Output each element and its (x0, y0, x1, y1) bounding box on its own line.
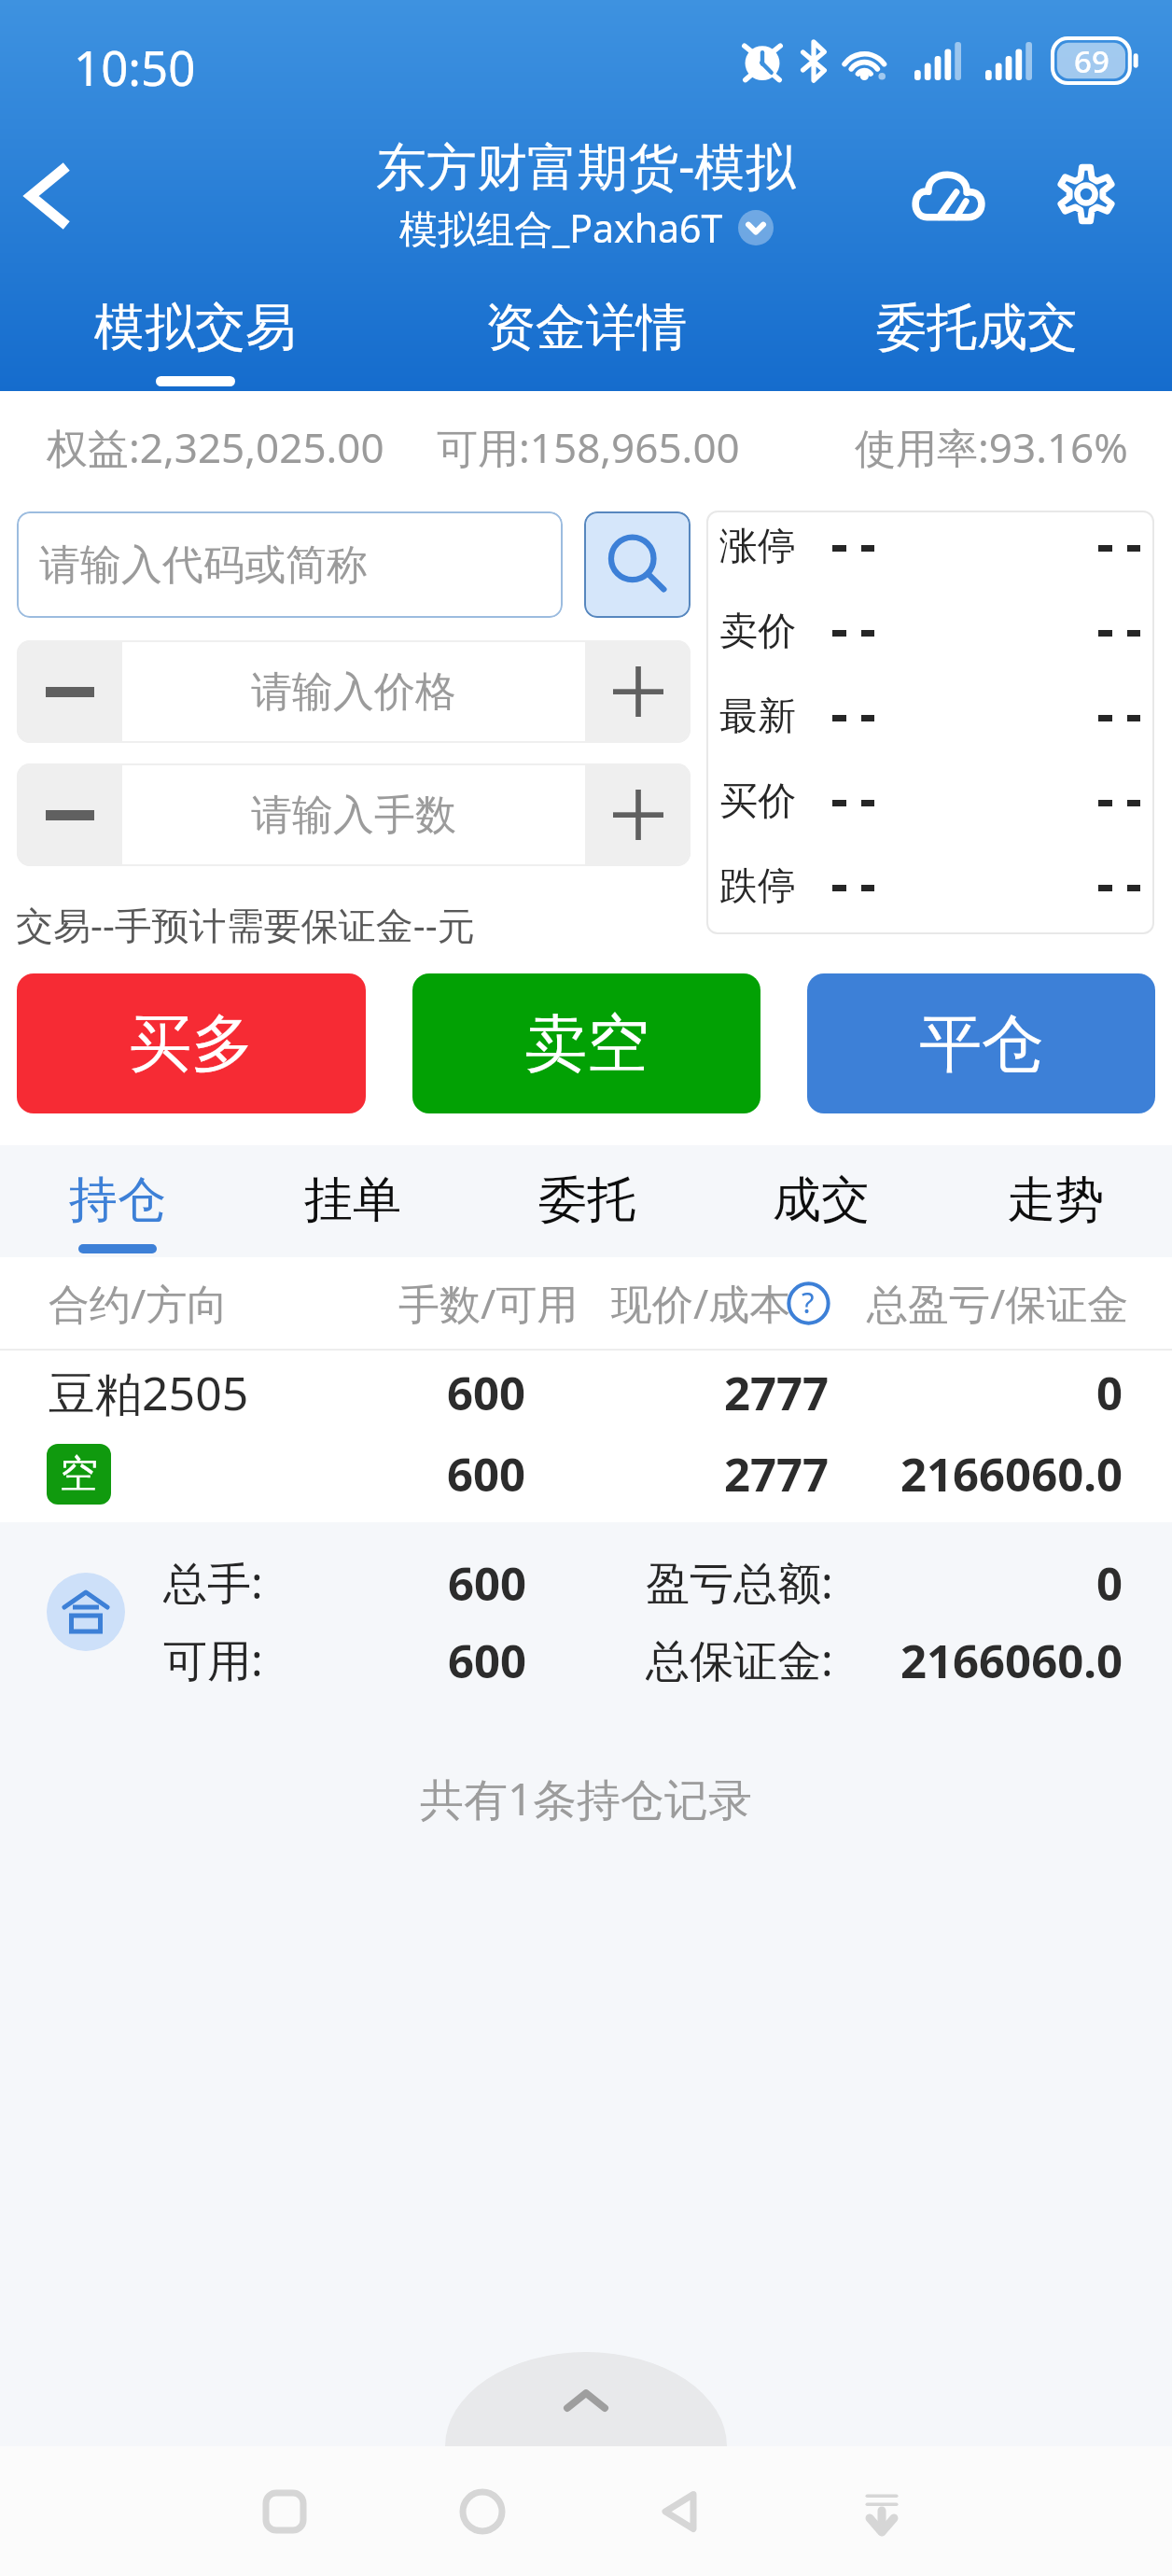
staticText: 600 (153, 1552, 526, 1604)
staticText: 委托成交 (876, 296, 1078, 359)
button[interactable]: 请输入代码或简称 (17, 511, 563, 618)
staticText: 挂单 (304, 1169, 401, 1231)
staticText: 2777 (455, 1443, 829, 1505)
button[interactable]: Search (584, 511, 691, 618)
button[interactable]: 委托 (469, 1145, 704, 1257)
staticText: 2166060.0 (749, 1443, 1123, 1505)
button[interactable]: Home (433, 2462, 532, 2561)
staticText: 600 (152, 1362, 525, 1424)
button[interactable]: 委托成交 (781, 271, 1172, 392)
button[interactable]: 走势 (938, 1145, 1172, 1257)
staticText: 2166060.0 (749, 1630, 1123, 1682)
staticText: 69 (1074, 40, 1109, 82)
button[interactable]: Hide keyboard (832, 2462, 931, 2561)
button[interactable]: 卖空 (412, 973, 760, 1113)
staticText: 委托 (538, 1169, 635, 1231)
staticText: 手数/可用 (398, 1275, 579, 1331)
staticText: 现价/成本 (611, 1275, 791, 1331)
staticText: 平仓 (919, 1004, 1044, 1083)
staticText: 走势 (1007, 1169, 1104, 1231)
staticText: 权益:2,325,025.00 (47, 419, 384, 475)
staticText: 使用率:93.16% (855, 419, 1128, 475)
staticText: 请输入代码或简称 (39, 539, 368, 591)
button[interactable]: Increase (585, 763, 691, 866)
staticText: 买多 (129, 1004, 254, 1083)
button[interactable]: Back (0, 121, 93, 271)
button[interactable]: Decrease (17, 763, 122, 866)
button[interactable]: 挂单 (235, 1145, 469, 1257)
staticText: 空 (60, 1450, 98, 1499)
button[interactable]: Expand panel (445, 2352, 727, 2446)
button[interactable]: 请输入价格 (122, 640, 585, 743)
button[interactable]: Recents (235, 2462, 334, 2561)
staticText: 10:50 (74, 35, 196, 99)
button[interactable]: 持仓 (0, 1145, 235, 1257)
staticText: 总保证金: (646, 1630, 833, 1682)
staticText: 卖空 (524, 1004, 649, 1083)
button[interactable]: Cloud storage (891, 138, 1003, 250)
staticText: 成交 (773, 1169, 870, 1231)
button[interactable]: 豆粕2505 (0, 1351, 1172, 1522)
staticText: 总手: (163, 1552, 263, 1604)
staticText: 模拟组合_Paxha6T (399, 202, 723, 254)
staticText: 0 (749, 1362, 1123, 1424)
staticText: 东方财富期货-模拟 (376, 131, 796, 200)
staticText: 600 (152, 1443, 525, 1505)
button[interactable]: 请输入手数 (122, 763, 585, 866)
staticText: 模拟交易 (94, 296, 296, 359)
staticText: 总盈亏/保证金 (867, 1275, 1129, 1331)
staticText: 最新 (719, 693, 796, 741)
staticText: 持仓 (69, 1169, 166, 1231)
staticText: 资金详情 (485, 296, 687, 359)
staticText: 跌停 (719, 862, 796, 911)
staticText: 交易--手预计需要保证金--元 (16, 899, 475, 950)
staticText: 共有1条持仓记录 (420, 1769, 752, 1828)
staticText: 请输入价格 (251, 666, 456, 718)
staticText: 请输入手数 (251, 790, 456, 841)
staticText: 涨停 (719, 523, 796, 571)
button[interactable]: 平仓 (807, 973, 1155, 1113)
button[interactable]: Settings (1030, 138, 1142, 250)
staticText: 可用: (163, 1630, 263, 1682)
staticText: 盈亏总额: (646, 1552, 833, 1604)
button[interactable]: Increase (585, 640, 691, 743)
button[interactable]: 模拟交易 (0, 271, 390, 392)
button[interactable]: Back (631, 2462, 730, 2561)
staticText: 豆粕2505 (49, 1361, 249, 1424)
staticText: 600 (153, 1630, 526, 1682)
button[interactable]: Decrease (17, 640, 122, 743)
staticText: 0 (749, 1552, 1123, 1604)
button[interactable]: 买多 (17, 973, 366, 1113)
staticText: 可用:158,965.00 (437, 419, 740, 475)
staticText: 合约/方向 (49, 1275, 229, 1331)
button[interactable]: 资金详情 (390, 271, 781, 392)
staticText: 2777 (455, 1362, 829, 1424)
staticText: ? (802, 1282, 815, 1322)
staticText: 卖价 (719, 608, 796, 656)
staticText: 买价 (719, 777, 796, 826)
button[interactable]: 成交 (704, 1145, 938, 1257)
